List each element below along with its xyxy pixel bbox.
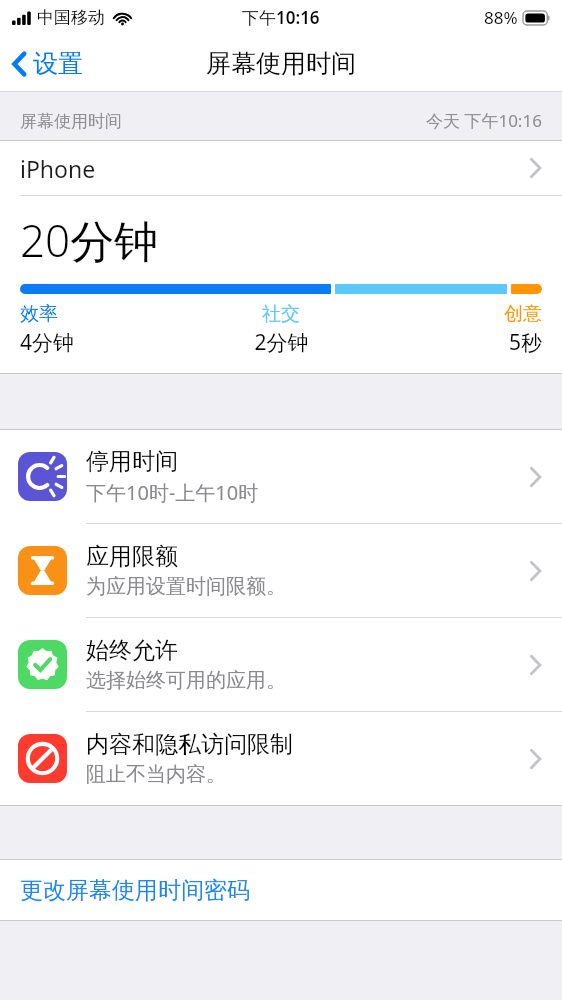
staticText: 2分钟 xyxy=(254,328,309,357)
staticText: 停用时间 xyxy=(86,447,178,476)
staticText: 阻止不当内容。 xyxy=(86,762,226,787)
staticText: 选择始终可用的应用。 xyxy=(86,668,286,693)
other: More xyxy=(529,748,542,770)
staticText: 内容和隐私访问限制 xyxy=(86,730,293,759)
staticText: 4分钟 xyxy=(20,328,75,357)
staticText: 更改屏幕使用时间密码 xyxy=(20,876,250,905)
staticText: 屏幕使用时间 xyxy=(20,111,122,132)
other: More xyxy=(529,466,542,488)
other: More xyxy=(529,157,542,179)
staticText: 今天 下午10:16 xyxy=(426,109,542,132)
button[interactable]: 应用限额 xyxy=(0,524,562,617)
staticText: 为应用设置时间限额。 xyxy=(86,574,286,599)
staticText: 设置 xyxy=(33,48,83,79)
staticText: 始终允许 xyxy=(86,636,178,665)
button[interactable]: 始终允许 xyxy=(0,618,562,711)
staticText: 应用限额 xyxy=(86,542,178,571)
staticText: 效率 xyxy=(20,302,58,326)
staticText: 20分钟 xyxy=(20,210,159,270)
staticText: 5秒 xyxy=(508,328,542,357)
staticText: 社交 xyxy=(262,302,300,326)
button[interactable]: 更改屏幕使用时间密码 xyxy=(0,860,562,920)
staticText: 屏幕使用时间 xyxy=(206,48,356,79)
button[interactable]: 停用时间 xyxy=(0,430,562,523)
staticText: 下午10:16 xyxy=(242,6,320,29)
button[interactable]: 设置 xyxy=(0,42,95,85)
button[interactable]: 内容和隐私访问限制 xyxy=(0,712,562,805)
other: More xyxy=(529,560,542,582)
staticText: 下午10时-上午10时 xyxy=(86,479,259,506)
staticText: 中国移动 xyxy=(37,7,105,28)
button[interactable]: iPhone xyxy=(0,141,562,195)
staticText: 创意 xyxy=(504,302,542,326)
other: More xyxy=(529,654,542,676)
staticText: 88% xyxy=(484,6,518,29)
staticText: iPhone xyxy=(20,153,96,184)
